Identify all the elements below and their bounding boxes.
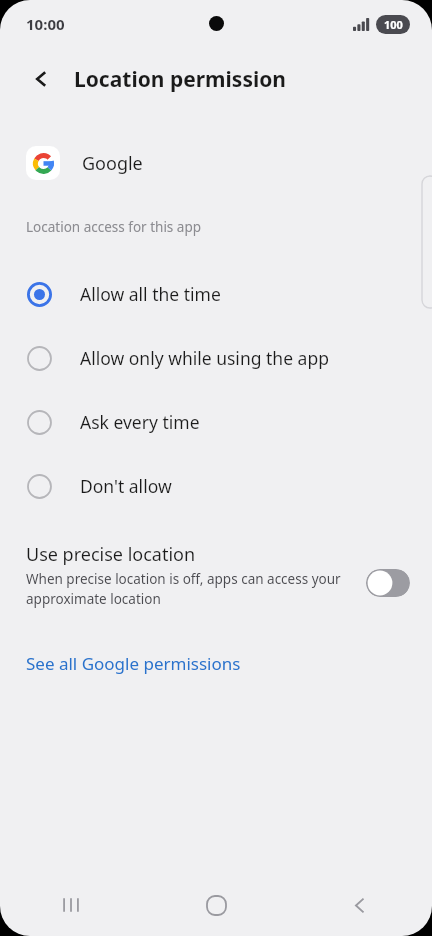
staticText: When precise location is off, apps can a… bbox=[26, 570, 410, 608]
button[interactable]: See all Google permissions bbox=[0, 648, 432, 683]
button[interactable]: Use precise location bbox=[0, 536, 432, 614]
staticText: Location access for this app bbox=[26, 218, 202, 236]
staticText: Google bbox=[82, 151, 143, 176]
staticText: Allow all the time bbox=[80, 282, 221, 306]
button[interactable]: Back bbox=[20, 57, 64, 101]
button[interactable]: Home bbox=[188, 877, 244, 933]
staticText: Use precise location bbox=[26, 542, 196, 567]
staticText: 100 bbox=[384, 17, 403, 32]
staticText: 10:00 bbox=[26, 14, 65, 34]
button[interactable]: Allow only while using the app bbox=[0, 326, 432, 390]
button[interactable]: Back bbox=[332, 877, 388, 933]
button[interactable]: Don't allow bbox=[0, 454, 432, 518]
button[interactable]: Ask every time bbox=[0, 390, 432, 454]
staticText: Location permission bbox=[74, 65, 286, 94]
staticText: See all Google permissions bbox=[26, 652, 241, 675]
staticText: Allow only while using the app bbox=[80, 346, 329, 370]
button[interactable]: Recent apps bbox=[44, 877, 100, 933]
button[interactable]: Allow all the time bbox=[0, 262, 432, 326]
staticText: Ask every time bbox=[80, 410, 200, 434]
staticText: Don't allow bbox=[80, 474, 172, 498]
button[interactable]: Google bbox=[0, 146, 432, 180]
button[interactable]: Use precise location toggle, off bbox=[366, 569, 410, 597]
